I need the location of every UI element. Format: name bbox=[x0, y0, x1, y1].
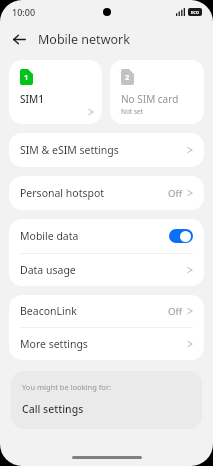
staticText: No SIM card bbox=[121, 92, 179, 106]
staticText: Mobile data bbox=[20, 229, 169, 243]
button[interactable]: Back bbox=[6, 26, 32, 52]
staticText: Mobile network bbox=[38, 31, 130, 48]
staticText: SIM1 bbox=[20, 92, 44, 106]
button[interactable]: SIM & eSIM settings bbox=[9, 133, 204, 167]
button[interactable]: Mobile data bbox=[9, 219, 204, 253]
staticText: SIM & eSIM settings bbox=[20, 143, 187, 157]
staticText: 1 bbox=[24, 72, 29, 82]
staticText: Data usage bbox=[20, 263, 187, 277]
staticText: Personal hotspot bbox=[20, 186, 168, 200]
button[interactable]: More settings bbox=[9, 328, 204, 360]
staticText: Off bbox=[168, 305, 182, 318]
staticText: Call settings bbox=[22, 402, 84, 416]
staticText: 2 bbox=[125, 72, 130, 82]
button[interactable]: Call settings bbox=[22, 402, 84, 416]
button[interactable]: 1 bbox=[9, 60, 102, 124]
staticText: More settings bbox=[20, 337, 187, 351]
staticText: Not set bbox=[121, 107, 144, 116]
button[interactable]: BeaconLink bbox=[9, 295, 204, 327]
staticText: 10:00 bbox=[12, 6, 36, 18]
button[interactable]: 2 bbox=[110, 60, 204, 124]
staticText: You might be looking for: bbox=[22, 382, 112, 392]
staticText: BeaconLink bbox=[20, 304, 168, 318]
staticText: ECO bbox=[191, 10, 199, 15]
button[interactable]: Data usage bbox=[9, 254, 204, 286]
other: Mobile data toggle bbox=[169, 229, 193, 243]
staticText: Off bbox=[168, 187, 182, 200]
button[interactable]: Personal hotspot bbox=[9, 176, 204, 210]
